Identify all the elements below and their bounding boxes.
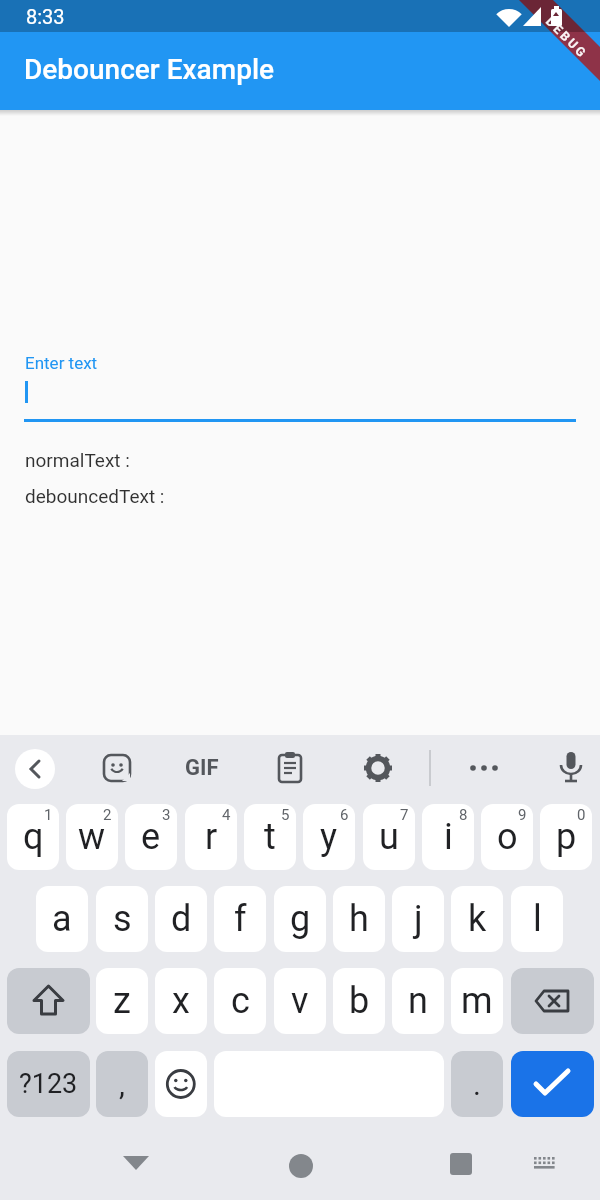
button[interactable]: [7, 968, 90, 1034]
button[interactable]: ,: [96, 1051, 148, 1117]
staticText: 5: [281, 806, 290, 824]
staticText: 6: [340, 806, 349, 824]
staticText: e: [141, 816, 161, 858]
button[interactable]: [93, 744, 141, 792]
staticText: k: [468, 898, 487, 940]
staticText: n: [408, 980, 428, 1022]
staticText: m: [461, 980, 493, 1022]
staticText: s: [113, 898, 132, 940]
staticText: p: [556, 816, 577, 858]
button[interactable]: GIF: [178, 744, 226, 792]
staticText: x: [172, 980, 190, 1022]
staticText: .: [473, 1067, 481, 1102]
staticText: d: [171, 898, 192, 940]
staticText: f: [234, 898, 247, 940]
button[interactable]: h: [333, 886, 385, 952]
button[interactable]: [460, 744, 508, 792]
button[interactable]: m: [451, 968, 503, 1034]
button[interactable]: [266, 744, 314, 792]
button[interactable]: Enter text: [0, 340, 600, 430]
staticText: u: [379, 816, 399, 858]
staticText: Enter text: [25, 353, 98, 373]
button[interactable]: e: [125, 804, 177, 870]
button[interactable]: w: [66, 804, 118, 870]
staticText: 3: [162, 806, 171, 824]
button[interactable]: [425, 1128, 497, 1200]
button[interactable]: [521, 1140, 569, 1188]
button[interactable]: o: [481, 804, 533, 870]
button[interactable]: j: [392, 886, 444, 952]
button[interactable]: v: [274, 968, 326, 1034]
button[interactable]: g: [274, 886, 326, 952]
staticText: y: [320, 816, 338, 858]
button[interactable]: k: [451, 886, 503, 952]
staticText: o: [497, 816, 518, 858]
button[interactable]: [100, 1128, 172, 1200]
staticText: q: [23, 816, 44, 858]
button[interactable]: r: [185, 804, 237, 870]
staticText: g: [290, 898, 311, 940]
button[interactable]: u: [363, 804, 415, 870]
staticText: t: [264, 816, 276, 858]
button[interactable]: [155, 1051, 207, 1117]
staticText: i: [444, 816, 453, 858]
staticText: ,: [119, 1067, 125, 1102]
button[interactable]: f: [214, 886, 266, 952]
staticText: debouncedText :: [25, 485, 165, 507]
button[interactable]: i: [422, 804, 474, 870]
button[interactable]: [511, 1051, 594, 1117]
button[interactable]: [547, 744, 595, 792]
button[interactable]: b: [333, 968, 385, 1034]
button[interactable]: [15, 749, 55, 789]
staticText: l: [533, 898, 542, 940]
staticText: b: [349, 980, 370, 1022]
button[interactable]: s: [96, 886, 148, 952]
staticText: 4: [222, 806, 231, 824]
button[interactable]: a: [36, 886, 88, 952]
button[interactable]: x: [155, 968, 207, 1034]
button[interactable]: n: [392, 968, 444, 1034]
button[interactable]: t: [244, 804, 296, 870]
staticText: 0: [577, 806, 586, 824]
button[interactable]: ?123: [7, 1051, 90, 1117]
button[interactable]: l: [511, 886, 563, 952]
staticText: r: [205, 816, 218, 858]
staticText: 8: [459, 806, 468, 824]
staticText: GIF: [185, 755, 219, 781]
staticText: j: [414, 898, 423, 940]
staticText: normalText :: [25, 449, 130, 471]
staticText: z: [113, 980, 131, 1022]
staticText: 8:33: [26, 5, 65, 28]
button[interactable]: [511, 968, 594, 1034]
button[interactable]: y: [303, 804, 355, 870]
button[interactable]: q: [7, 804, 59, 870]
button[interactable]: .: [451, 1051, 503, 1117]
staticText: DEBUG: [543, 14, 591, 62]
staticText: a: [52, 898, 72, 940]
staticText: 1: [44, 806, 53, 824]
button[interactable]: [265, 1128, 337, 1200]
staticText: v: [291, 980, 309, 1022]
button[interactable]: [354, 744, 402, 792]
staticText: 9: [518, 806, 527, 824]
staticText: ?123: [19, 1068, 78, 1100]
button[interactable]: p: [540, 804, 592, 870]
button[interactable]: z: [96, 968, 148, 1034]
staticText: Debouncer Example: [24, 53, 275, 86]
staticText: 2: [103, 806, 112, 824]
staticText: w: [78, 816, 106, 858]
staticText: 7: [400, 806, 409, 824]
button[interactable]: c: [214, 968, 266, 1034]
button[interactable]: d: [155, 886, 207, 952]
staticText: h: [349, 898, 369, 940]
staticText: c: [231, 980, 250, 1022]
